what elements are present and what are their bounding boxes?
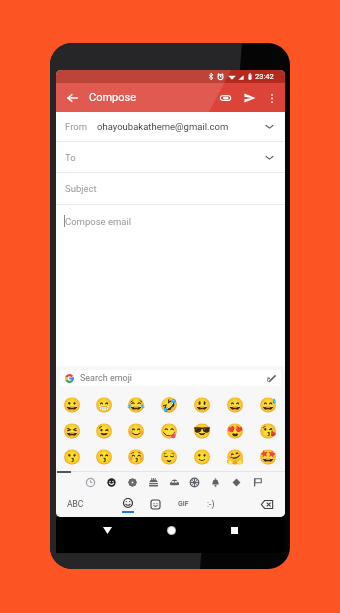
button[interactable]: Activity [187,475,202,490]
staticText: Search emoji [80,373,133,384]
staticText: ABC [67,499,84,509]
staticText: 😅 [259,397,278,414]
button[interactable]: More options [262,88,282,108]
staticText: 🤣 [160,397,179,414]
staticText: Subject [65,183,97,194]
button[interactable]: 😌 [153,444,186,470]
staticText: 😆 [63,423,82,440]
button[interactable]: 😁 [88,392,120,418]
button[interactable]: Home [158,517,184,543]
button[interactable]: 😃 [186,392,219,418]
button[interactable]: 😋 [153,418,186,444]
staticText: To [65,152,76,163]
staticText: 😌 [160,449,179,466]
staticText: 😗 [63,449,82,466]
staticText: 😁 [95,397,114,414]
button[interactable]: 🤣 [153,392,186,418]
staticText: 😚 [127,449,146,466]
button[interactable]: 😊 [120,418,153,444]
button[interactable]: 😀 [56,392,88,418]
button[interactable]: Attach file [215,88,235,108]
staticText: 😄 [226,397,245,414]
button[interactable]: 😅 [252,392,285,418]
button[interactable]: GIF [169,491,197,517]
staticText: 😀 [63,397,82,414]
staticText: 😙 [95,449,114,466]
button[interactable]: Search emoji [60,370,281,386]
button[interactable]: To [56,142,285,172]
button[interactable]: 😗 [56,444,88,470]
button[interactable]: 😂 [120,392,153,418]
button[interactable]: Smileys [104,475,119,490]
button[interactable]: 😙 [88,444,120,470]
staticText: 😘 [259,423,278,440]
button[interactable]: 🙂 [186,444,219,470]
staticText: From [65,121,88,132]
staticText: 😃 [193,397,212,414]
button[interactable]: Objects [208,475,223,490]
button[interactable]: 😚 [120,444,153,470]
button[interactable]: 😆 [56,418,88,444]
button[interactable]: Emoji [114,491,142,517]
button[interactable]: 😉 [88,418,120,444]
button[interactable]: Navigate up [62,88,82,108]
button[interactable]: Recent [83,475,98,490]
staticText: 😊 [127,423,146,440]
button[interactable]: 😎 [186,418,219,444]
button[interactable]: 😄 [219,392,252,418]
button[interactable]: Nature [125,475,140,490]
button[interactable]: 🤩 [252,444,285,470]
staticText: 🙂 [193,449,212,466]
staticText: 😎 [193,423,212,440]
button[interactable]: ABC [56,491,95,517]
staticText: 😉 [95,423,114,440]
staticText: 😍 [226,423,245,440]
button[interactable]: Flags [250,475,265,490]
staticText: :-) [207,499,215,509]
staticText: 23:42 [255,72,274,81]
staticText: Compose email [65,216,132,227]
button[interactable]: Travel [167,475,182,490]
staticText: 🤗 [226,449,245,466]
button[interactable]: Backspace [250,491,284,517]
button[interactable]: Hide keyboard [94,517,120,543]
staticText: ohayoubakatheme@gmail.com [97,121,229,132]
staticText: 😋 [160,423,179,440]
staticText: 😂 [127,397,146,414]
button[interactable]: Food [146,475,161,490]
button[interactable]: 😍 [219,418,252,444]
button[interactable]: Recents [221,517,247,543]
staticText: GIF [178,500,189,508]
button[interactable]: Send [240,88,260,108]
button[interactable]: Subject [56,173,285,204]
staticText: Compose [89,91,137,104]
button[interactable]: From [56,112,285,141]
button[interactable]: :-) [197,491,225,517]
staticText: 🤩 [259,449,278,466]
button[interactable]: Stickers [142,491,168,517]
button[interactable]: Symbols [229,475,244,490]
button[interactable]: 🤗 [219,444,252,470]
button[interactable]: 😘 [252,418,285,444]
